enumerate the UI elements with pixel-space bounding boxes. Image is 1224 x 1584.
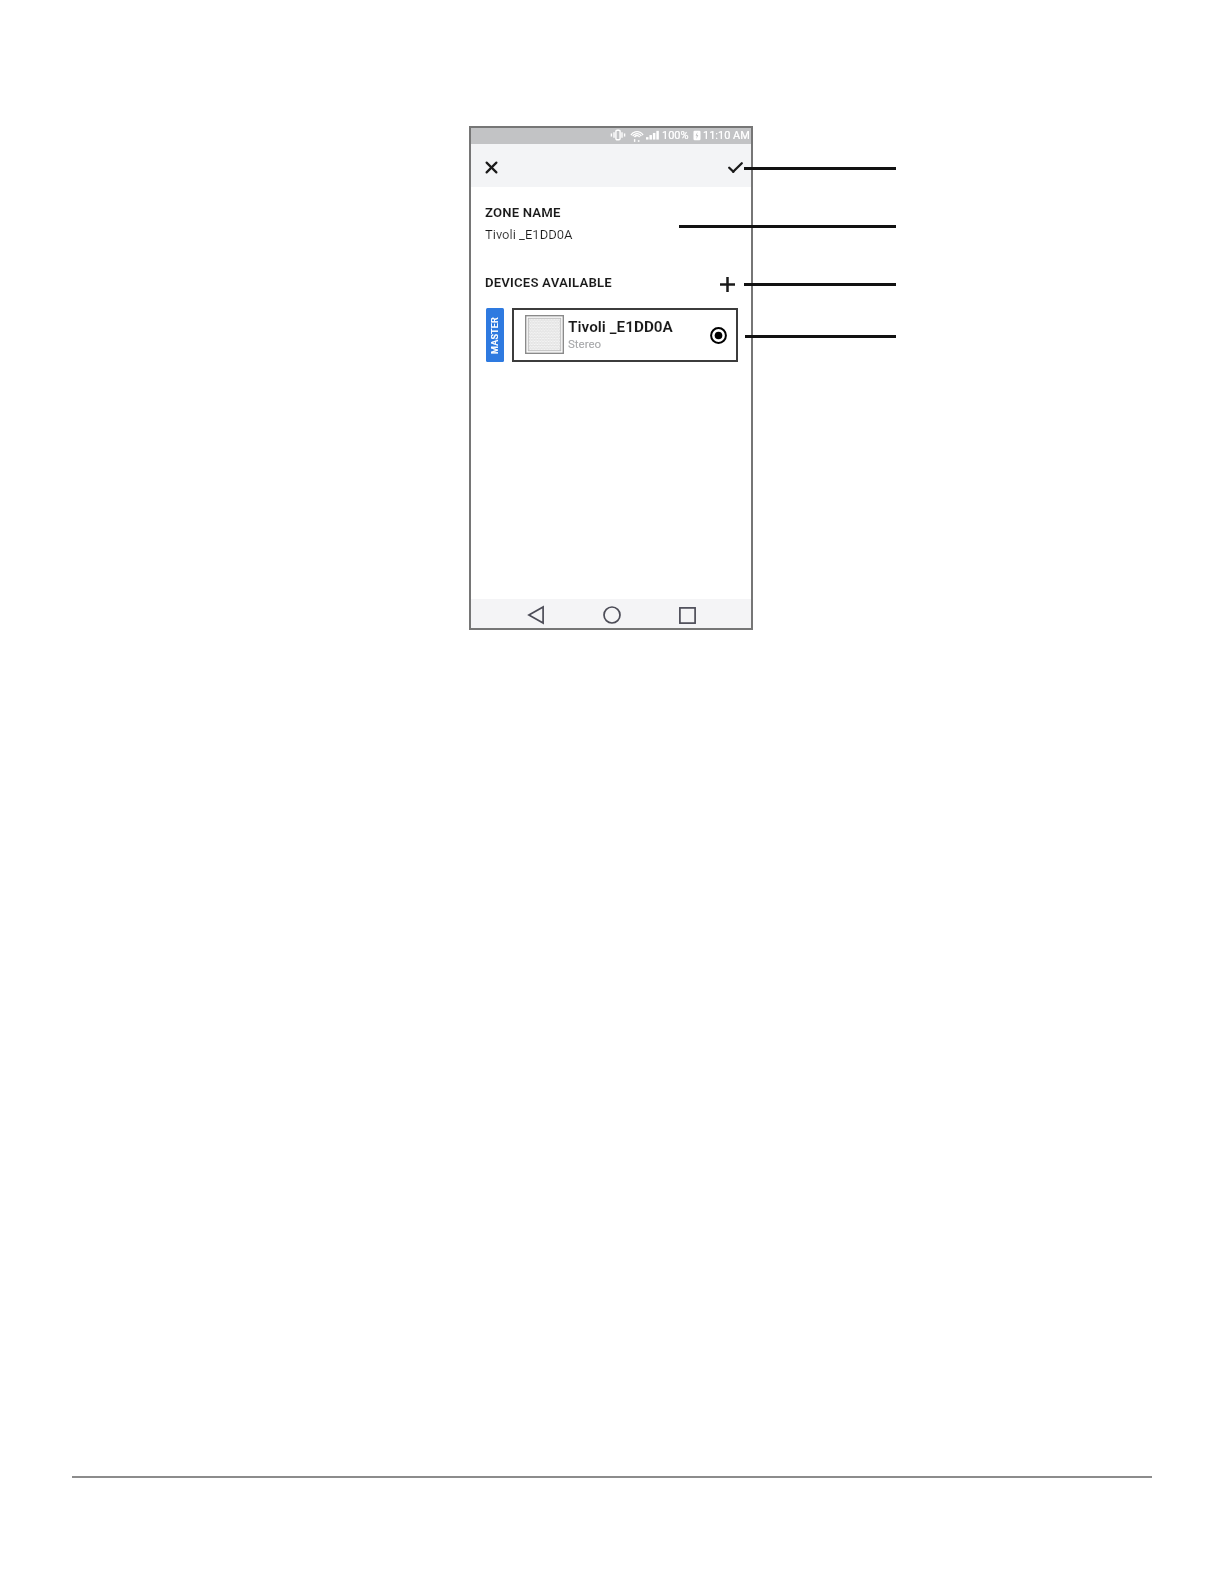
button[interactable]: Select device bbox=[707, 324, 729, 346]
staticText: ZONE NAME bbox=[485, 205, 561, 220]
button[interactable]: Back bbox=[521, 600, 551, 630]
staticText: Tivoli _E1DD0A bbox=[568, 318, 673, 336]
button[interactable]: Confirm bbox=[721, 153, 749, 181]
button[interactable]: Tivoli _E1DD0A bbox=[512, 308, 738, 362]
button[interactable]: MASTER bbox=[486, 308, 504, 362]
staticText: MASTER bbox=[490, 317, 501, 354]
staticText: 100% bbox=[662, 129, 689, 142]
button[interactable]: Home bbox=[597, 600, 627, 630]
button[interactable]: Add device bbox=[713, 270, 741, 298]
button[interactable]: Recents bbox=[672, 600, 702, 630]
staticText: DEVICES AVAILABLE bbox=[485, 275, 612, 290]
staticText: 11:10 AM bbox=[703, 129, 750, 142]
staticText: Stereo bbox=[568, 337, 602, 350]
staticText: Tivoli _E1DD0A bbox=[485, 227, 573, 242]
button[interactable]: Close bbox=[477, 153, 505, 181]
